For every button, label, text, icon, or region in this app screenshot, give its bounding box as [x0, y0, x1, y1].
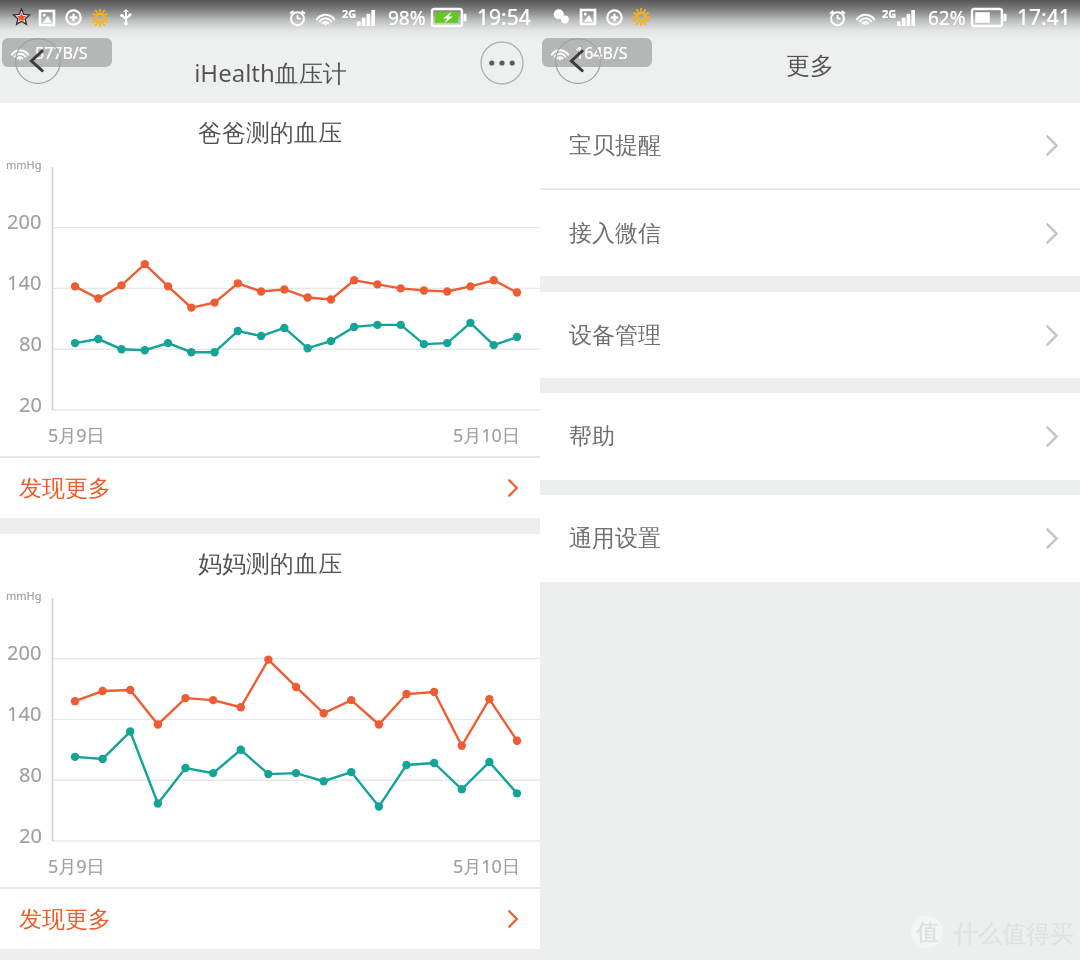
staticText: 2G	[342, 6, 357, 21]
staticText: 值	[916, 918, 939, 947]
staticText: 577B/S	[35, 42, 88, 64]
button[interactable]: Back	[15, 38, 61, 84]
staticText: 80	[19, 330, 42, 357]
staticText: 200	[7, 639, 42, 666]
staticText: mmHg	[6, 588, 42, 603]
staticText: 200	[7, 208, 42, 235]
staticText: 5月9日	[48, 423, 105, 448]
staticText: 20	[19, 822, 42, 849]
button[interactable]: 通用设置	[540, 495, 1080, 582]
staticText: 设备管理	[569, 321, 661, 350]
staticText: mmHg	[6, 157, 42, 172]
button[interactable]: 发现更多	[0, 889, 540, 949]
staticText: iHealth血压计	[194, 56, 347, 89]
staticText: 什么值得买	[954, 919, 1074, 949]
staticText: 19:54	[477, 3, 531, 32]
staticText: 17:41	[1017, 3, 1071, 32]
staticText: 164B/S	[575, 42, 628, 64]
staticText: 80	[19, 761, 42, 788]
staticText: 发现更多	[19, 905, 111, 934]
staticText: 20	[19, 391, 42, 418]
staticText: 通用设置	[569, 524, 661, 553]
staticText: 140	[7, 269, 42, 296]
staticText: 2G	[882, 6, 897, 21]
staticText: 帮助	[569, 422, 615, 451]
staticText: 5月9日	[48, 854, 105, 879]
button[interactable]: 帮助	[540, 393, 1080, 480]
staticText: 5月10日	[453, 423, 520, 448]
button[interactable]: 发现更多	[0, 458, 540, 518]
button[interactable]: 设备管理	[540, 292, 1080, 378]
staticText: 140	[7, 700, 42, 727]
staticText: 妈妈测的血压	[198, 549, 342, 579]
button[interactable]: 接入微信	[540, 190, 1080, 276]
button[interactable]: More options	[480, 41, 524, 85]
staticText: 接入微信	[569, 219, 661, 248]
button[interactable]: Back	[555, 38, 601, 84]
staticText: 98%	[388, 5, 426, 31]
staticText: 发现更多	[19, 474, 111, 503]
staticText: 更多	[786, 51, 834, 81]
staticText: 宝贝提醒	[569, 131, 661, 160]
staticText: 5月10日	[453, 854, 520, 879]
button[interactable]: 宝贝提醒	[540, 103, 1080, 188]
staticText: 62%	[928, 5, 966, 31]
staticText: 爸爸测的血压	[198, 118, 342, 148]
